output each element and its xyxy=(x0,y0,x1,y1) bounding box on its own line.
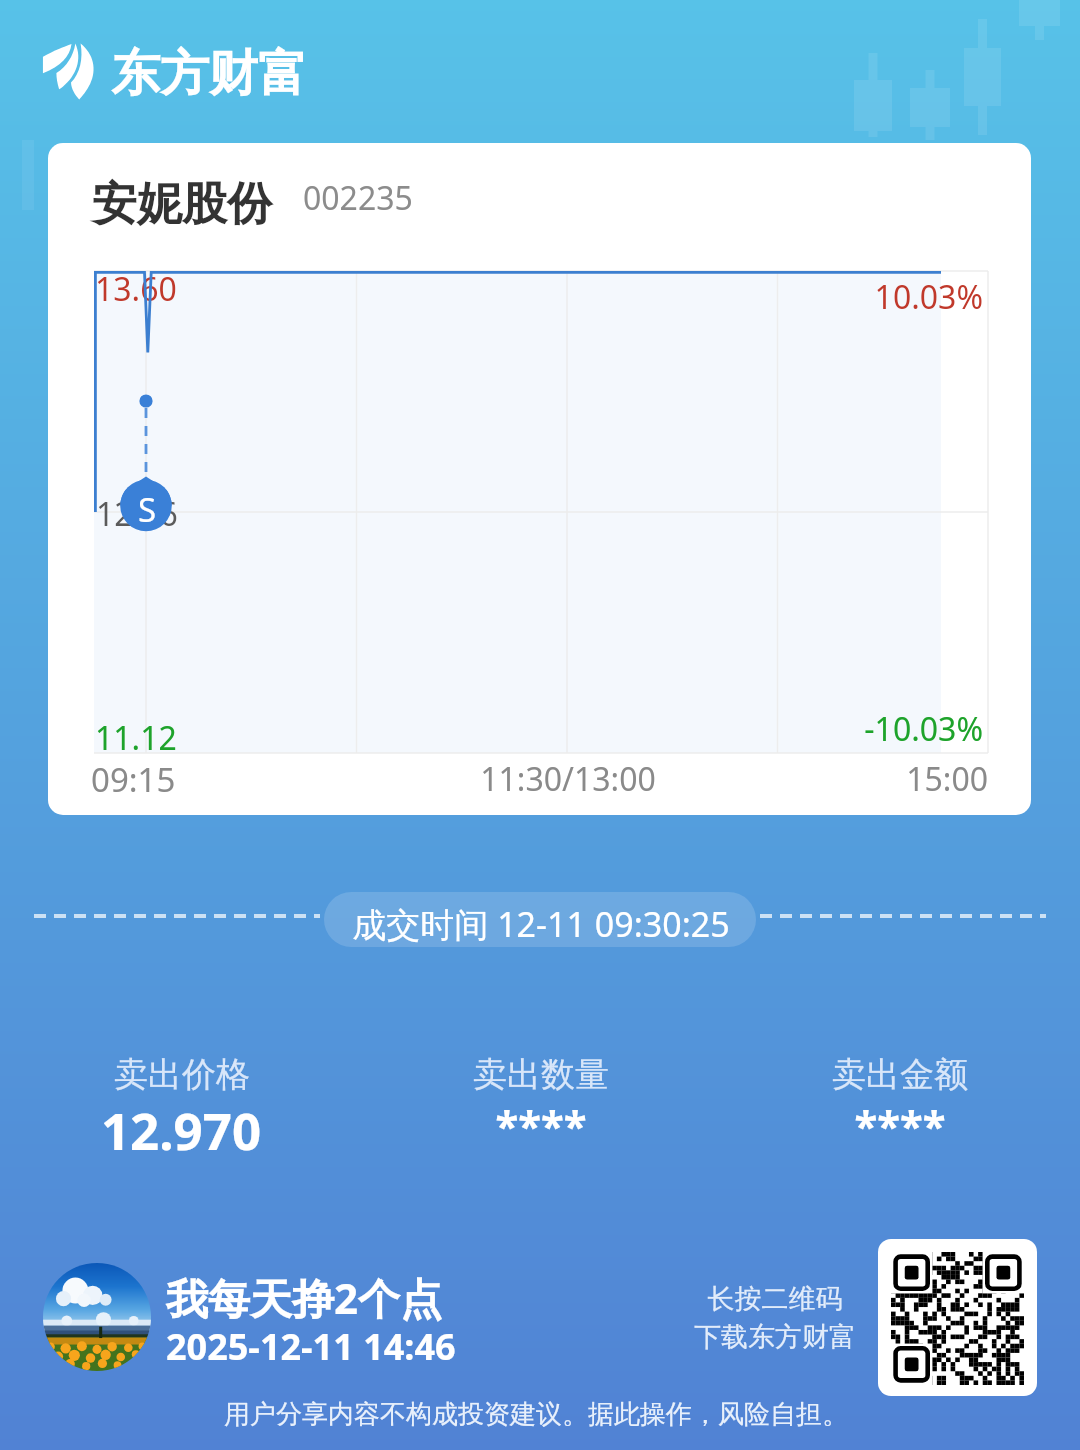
staticText: -10.03% xyxy=(383,707,983,751)
button[interactable]: 我每天挣2个点 2025-12-11 14:46 xyxy=(40,1258,470,1378)
staticText: 10.03% xyxy=(383,275,983,319)
staticText: 12.970 xyxy=(0,1095,581,1164)
staticText: 2025-12-11 14:46 xyxy=(166,1322,456,1371)
staticText: 002235 xyxy=(303,176,413,220)
staticText: **** xyxy=(500,1096,1080,1153)
staticText: **** xyxy=(141,1096,941,1153)
staticText: 11:30/13:00 xyxy=(168,757,968,801)
staticText: 下载东方财富 xyxy=(375,1320,1080,1354)
staticText: 13.60 xyxy=(95,267,177,311)
staticText: 12.36 xyxy=(96,492,178,536)
button[interactable] xyxy=(324,892,756,947)
staticText: S xyxy=(0,487,547,532)
staticText: 成交时间 12-11 09:30:25 xyxy=(141,901,941,947)
button[interactable] xyxy=(48,143,1031,815)
staticText: 卖出数量 xyxy=(141,1053,941,1096)
staticText: 09:15 xyxy=(91,757,176,802)
staticText: 卖出价格 xyxy=(0,1053,582,1096)
button[interactable]: 东方财富 xyxy=(32,30,320,110)
staticText: 东方财富 xyxy=(111,43,307,105)
staticText: 15:00 xyxy=(388,757,988,801)
staticText: 长按二维码 xyxy=(375,1282,1080,1316)
staticText: 安妮股份 xyxy=(92,176,272,233)
staticText: 用户分享内容不构成投资建议。据此操作，风险自担。 xyxy=(136,1398,936,1431)
staticText: 我每天挣2个点 xyxy=(166,1269,443,1326)
button[interactable]: 二维码 下载东方财富 xyxy=(878,1239,1037,1396)
staticText: 11.12 xyxy=(95,716,177,760)
staticText: 卖出金额 xyxy=(500,1053,1080,1096)
